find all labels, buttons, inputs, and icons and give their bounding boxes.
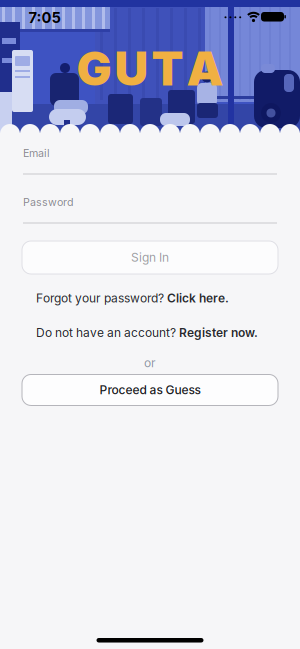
- button[interactable]: Password: [23, 194, 277, 223]
- staticText: Sign In: [131, 250, 169, 265]
- staticText: Password: [23, 196, 74, 208]
- button[interactable]: Sign In: [22, 241, 278, 274]
- staticText: Forgot your password? Click here.: [36, 291, 229, 305]
- staticText: Email: [23, 147, 50, 159]
- staticText: 7:05: [28, 9, 60, 26]
- staticText: or: [144, 356, 156, 370]
- button[interactable]: Do not have an account? Register now.: [36, 326, 258, 340]
- button[interactable]: Proceed as Guess: [22, 374, 278, 405]
- button[interactable]: Forgot your password? Click here.: [36, 291, 229, 305]
- staticText: U: [114, 41, 148, 96]
- button[interactable]: Email: [23, 145, 277, 174]
- staticText: Do not have an account? Register now.: [36, 326, 258, 340]
- staticText: Proceed as Guess: [99, 383, 200, 397]
- staticText: A: [186, 41, 223, 96]
- staticText: G: [76, 41, 111, 96]
- staticText: T: [151, 41, 183, 96]
